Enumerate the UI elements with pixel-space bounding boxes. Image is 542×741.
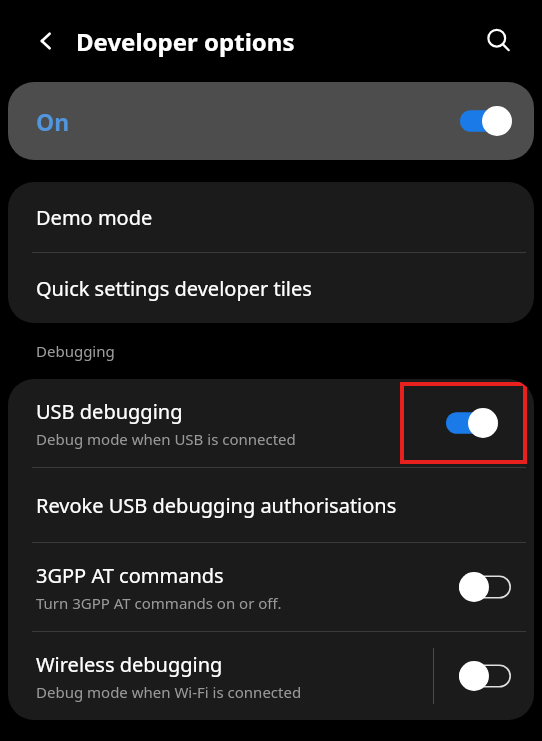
button[interactable]: Toggle off	[459, 572, 511, 602]
button[interactable]: On	[8, 82, 534, 160]
button[interactable]: Revoke USB debugging authorisations	[8, 468, 534, 542]
staticText: Quick settings developer tiles	[36, 275, 312, 302]
button[interactable]: Quick settings developer tiles	[8, 253, 534, 323]
staticText: Demo mode	[36, 204, 153, 231]
button[interactable]: Wireless debugging	[8, 632, 534, 720]
button[interactable]: Demo mode	[8, 182, 534, 252]
button[interactable]: Toggle on	[460, 106, 512, 136]
staticText: On	[36, 106, 70, 137]
button[interactable]: USB debugging	[8, 379, 534, 467]
button[interactable]: 3GPP AT commands	[8, 543, 534, 631]
staticText: Debug mode when USB is connected	[36, 429, 296, 449]
button[interactable]: Toggle off	[459, 661, 511, 691]
staticText: Debug mode when Wi-Fi is connected	[36, 682, 302, 702]
button[interactable]: Search	[476, 18, 522, 64]
staticText: Revoke USB debugging authorisations	[36, 492, 397, 519]
staticText: Developer options	[76, 25, 295, 58]
staticText: Debugging	[36, 341, 115, 361]
button[interactable]: Back	[24, 19, 68, 63]
staticText: 3GPP AT commands	[36, 562, 224, 589]
staticText: USB debugging	[36, 398, 183, 425]
staticText: Turn 3GPP AT commands on or off.	[36, 593, 282, 613]
staticText: Wireless debugging	[36, 651, 223, 678]
button[interactable]: Toggle on	[446, 408, 498, 438]
